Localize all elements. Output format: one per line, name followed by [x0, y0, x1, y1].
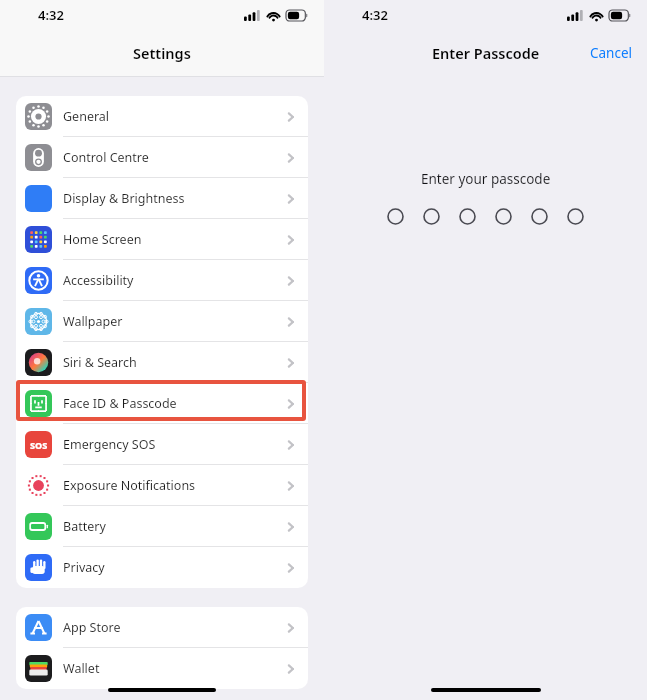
button[interactable]: Accessibility	[16, 260, 308, 301]
staticText: Control Centre	[63, 149, 285, 166]
staticText: Privacy	[63, 559, 285, 576]
button[interactable]: Face ID & Passcode	[16, 383, 308, 424]
staticText: General	[63, 108, 285, 125]
staticText: App Store	[63, 619, 285, 636]
staticText: Enter Passcode	[432, 43, 540, 63]
staticText: Siri & Search	[63, 354, 285, 371]
staticText: 4:32	[38, 6, 64, 24]
staticText: Accessibility	[63, 272, 285, 289]
button[interactable]: Wallet	[16, 648, 308, 689]
button[interactable]: Battery	[16, 506, 308, 547]
staticText: SOS	[30, 439, 48, 451]
staticText: Enter your passcode	[421, 170, 551, 188]
staticText: Battery	[63, 518, 285, 535]
button[interactable]: Cancel	[586, 40, 637, 66]
staticText: Cancel	[590, 44, 633, 62]
staticText: Face ID & Passcode	[63, 395, 285, 412]
button[interactable]: App Store	[16, 607, 308, 648]
staticText: Home Screen	[63, 231, 285, 248]
staticText: Exposure Notifications	[63, 477, 285, 494]
button[interactable]: Siri & Search	[16, 342, 308, 383]
button[interactable]: Privacy	[16, 547, 308, 588]
button[interactable]: Wallpaper	[16, 301, 308, 342]
button[interactable]: SOS	[16, 424, 308, 465]
staticText: Settings	[133, 43, 191, 63]
staticText: Wallet	[63, 660, 285, 677]
button[interactable]: Exposure Notifications	[16, 465, 308, 506]
staticText: Emergency SOS	[63, 436, 285, 453]
button[interactable]: General	[16, 96, 308, 137]
button[interactable]: Display & Brightness	[16, 178, 308, 219]
staticText: Display & Brightness	[63, 190, 285, 207]
button[interactable]: Control Centre	[16, 137, 308, 178]
staticText: Wallpaper	[63, 313, 285, 330]
staticText: 4:32	[362, 6, 388, 24]
button[interactable]: Home Screen	[16, 219, 308, 260]
